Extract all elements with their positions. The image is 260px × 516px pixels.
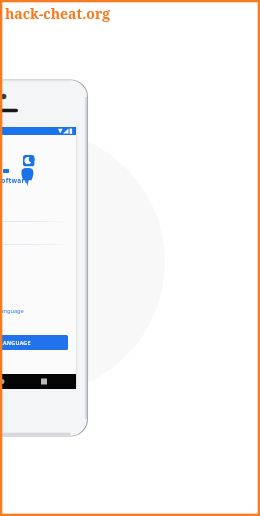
- button[interactable]: [0, 199, 76, 221]
- staticText: Select language: [0, 307, 24, 315]
- button[interactable]: CHANGE LANGUAGE: [0, 335, 68, 350]
- button[interactable]: [0, 245, 76, 267]
- staticText: hack-cheat.org: [5, 4, 111, 23]
- button[interactable]: Home: [0, 374, 15, 389]
- staticText: Everyday Software: [0, 176, 29, 185]
- button[interactable]: Everyday Software: [0, 150, 76, 190]
- button[interactable]: [0, 222, 76, 243]
- staticText: CHANGE LANGUAGE: [0, 339, 31, 346]
- button[interactable]: Recent apps: [31, 374, 57, 389]
